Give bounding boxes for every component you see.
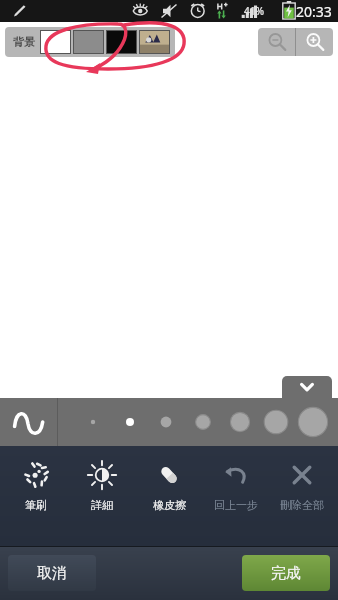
staticText: 回上一步 <box>214 498 258 512</box>
button[interactable]: Brush size 7 <box>296 405 330 439</box>
button[interactable]: 回上一步 <box>205 458 267 512</box>
button[interactable]: Zoom in <box>296 28 333 56</box>
button[interactable] <box>41 31 70 53</box>
button[interactable]: 詳細 <box>71 458 133 512</box>
button[interactable]: Brush size 5 <box>223 405 257 439</box>
staticText: 詳細 <box>91 498 113 512</box>
button[interactable]: Brush preview <box>0 398 57 446</box>
staticText: 背景 <box>13 35 35 49</box>
button[interactable]: Brush size 6 <box>259 405 293 439</box>
staticText: 刪除全部 <box>280 498 324 512</box>
button[interactable]: Brush size 1 <box>76 405 110 439</box>
button[interactable] <box>140 31 169 53</box>
button[interactable]: 刪除全部 <box>271 458 333 512</box>
staticText: 41% <box>244 4 264 18</box>
button[interactable]: Brush size 3 <box>149 405 183 439</box>
button[interactable]: Brush size 4 <box>186 405 220 439</box>
button[interactable] <box>107 31 136 53</box>
button[interactable]: 取消 <box>8 555 96 591</box>
staticText: 橡皮擦 <box>153 498 186 512</box>
button[interactable]: 背景 <box>9 28 39 56</box>
staticText: 完成 <box>271 564 301 583</box>
staticText: 20:33 <box>296 2 332 21</box>
button[interactable]: 筆刷 <box>5 458 67 512</box>
button[interactable]: Brush size 2 <box>113 405 147 439</box>
button[interactable]: 橡皮擦 <box>138 458 200 512</box>
button[interactable]: Collapse <box>282 376 332 398</box>
button[interactable]: Zoom out <box>258 28 295 56</box>
button[interactable]: 完成 <box>242 555 330 591</box>
staticText: 筆刷 <box>25 498 47 512</box>
staticText: 取消 <box>37 564 67 583</box>
